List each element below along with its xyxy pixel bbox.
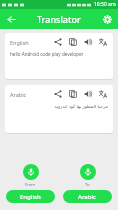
staticText: From bbox=[25, 182, 36, 188]
button[interactable]: English bbox=[6, 190, 55, 203]
button[interactable]: Speak bbox=[83, 37, 93, 47]
button[interactable]: Share bbox=[53, 89, 63, 99]
button[interactable]: Share bbox=[53, 37, 63, 47]
button[interactable]: Record From bbox=[23, 164, 39, 180]
button[interactable]: Arabic bbox=[5, 85, 113, 133]
button[interactable]: Settings bbox=[100, 12, 114, 26]
button[interactable]: Speak bbox=[83, 89, 93, 99]
button[interactable]: Translate bbox=[98, 89, 108, 99]
button[interactable]: Record To bbox=[80, 164, 96, 180]
staticText: English bbox=[10, 39, 29, 46]
staticText: مرحبا المطور بها كود اندرويد bbox=[10, 103, 108, 109]
button[interactable]: Copy bbox=[68, 89, 78, 99]
staticText: 10:50 am bbox=[94, 1, 116, 8]
button[interactable]: Arabic bbox=[63, 190, 112, 203]
staticText: Arabic bbox=[10, 91, 27, 98]
staticText: Arabic bbox=[78, 193, 97, 201]
staticText: Translator bbox=[37, 13, 81, 25]
staticText: To bbox=[85, 182, 90, 188]
button[interactable]: Copy bbox=[68, 37, 78, 47]
button[interactable]: Translate bbox=[98, 37, 108, 47]
button[interactable]: Back bbox=[4, 12, 18, 26]
staticText: English bbox=[20, 193, 41, 201]
staticText: hello Android code play developer bbox=[10, 51, 108, 57]
button[interactable]: English bbox=[5, 33, 113, 79]
